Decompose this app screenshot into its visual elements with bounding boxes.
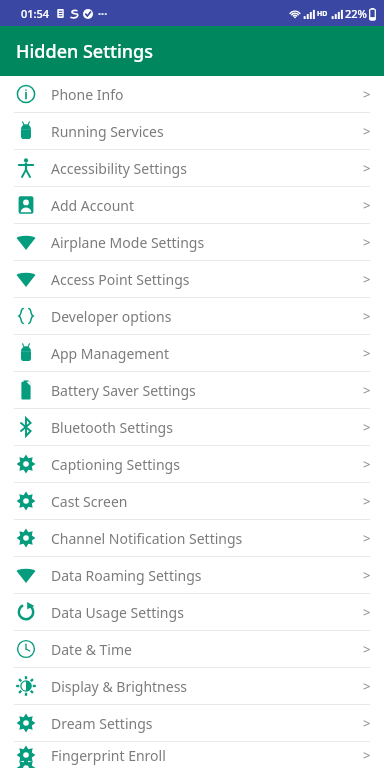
- staticText: Channel Notification Settings: [51, 529, 350, 548]
- staticText: >: [363, 307, 371, 325]
- staticText: >: [363, 270, 371, 288]
- button[interactable]: Bluetooth Settings: [0, 409, 384, 446]
- staticText: Accessibility Settings: [51, 159, 350, 178]
- staticText: Access Point Settings: [51, 270, 350, 289]
- staticText: >: [363, 746, 371, 764]
- staticText: >: [363, 677, 371, 695]
- staticText: Developer options: [51, 307, 350, 326]
- staticText: Battery Saver Settings: [51, 381, 350, 400]
- staticText: Captioning Settings: [51, 455, 350, 474]
- staticText: Airplane Mode Settings: [51, 233, 350, 252]
- button[interactable]: App Management: [0, 335, 384, 372]
- staticText: >: [363, 381, 371, 399]
- staticText: >: [363, 714, 371, 732]
- staticText: >: [363, 529, 371, 547]
- button[interactable]: Data Usage Settings: [0, 594, 384, 631]
- button[interactable]: Running Services: [0, 113, 384, 150]
- staticText: >: [363, 233, 371, 251]
- staticText: >: [363, 566, 371, 584]
- button[interactable]: Display & Brightness: [0, 668, 384, 705]
- button[interactable]: Phone Info: [0, 76, 384, 113]
- staticText: Fingerprint Enroll: [51, 746, 350, 765]
- button[interactable]: Data Roaming Settings: [0, 557, 384, 594]
- button[interactable]: Battery Saver Settings: [0, 372, 384, 409]
- button[interactable]: Cast Screen: [0, 483, 384, 520]
- staticText: >: [363, 418, 371, 436]
- staticText: Data Usage Settings: [51, 603, 350, 622]
- staticText: Phone Info: [51, 85, 350, 104]
- button[interactable]: Fingerprint Enroll: [0, 742, 384, 768]
- staticText: Date & Time: [51, 640, 350, 659]
- button[interactable]: Developer options: [0, 298, 384, 335]
- staticText: Add Account: [51, 196, 350, 215]
- staticText: Data Roaming Settings: [51, 566, 350, 585]
- button[interactable]: Access Point Settings: [0, 261, 384, 298]
- button[interactable]: Airplane Mode Settings: [0, 224, 384, 261]
- button[interactable]: Channel Notification Settings: [0, 520, 384, 557]
- button[interactable]: Dream Settings: [0, 705, 384, 742]
- staticText: Hidden Settings: [16, 39, 154, 64]
- staticText: HD: [317, 9, 328, 19]
- staticText: >: [363, 344, 371, 362]
- staticText: >: [363, 603, 371, 621]
- button[interactable]: Add Account: [0, 187, 384, 224]
- button[interactable]: Date & Time: [0, 631, 384, 668]
- staticText: Dream Settings: [51, 714, 350, 733]
- staticText: Cast Screen: [51, 492, 350, 511]
- staticText: >: [363, 640, 371, 658]
- staticText: >: [363, 492, 371, 510]
- staticText: >: [363, 122, 371, 140]
- staticText: Running Services: [51, 122, 350, 141]
- staticText: ···: [98, 6, 108, 21]
- button[interactable]: Captioning Settings: [0, 446, 384, 483]
- staticText: Display & Brightness: [51, 677, 350, 696]
- staticText: 22%: [345, 6, 367, 21]
- staticText: Bluetooth Settings: [51, 418, 350, 437]
- staticText: App Management: [51, 344, 350, 363]
- staticText: >: [363, 455, 371, 473]
- button[interactable]: Accessibility Settings: [0, 150, 384, 187]
- staticText: >: [363, 85, 371, 103]
- staticText: >: [363, 159, 371, 177]
- staticText: 01:54: [21, 6, 50, 21]
- staticText: >: [363, 196, 371, 214]
